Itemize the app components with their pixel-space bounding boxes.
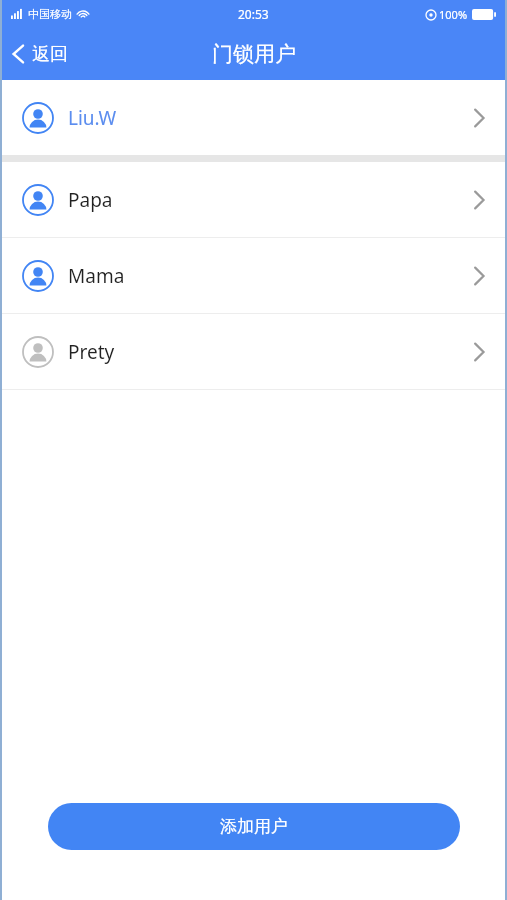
button[interactable]: Mama bbox=[0, 238, 507, 313]
staticText: Mama bbox=[68, 263, 125, 289]
staticText: 100% bbox=[439, 7, 468, 22]
button[interactable]: Liu.W bbox=[0, 80, 507, 155]
button[interactable]: Papa bbox=[0, 162, 507, 237]
staticText: 门锁用户 bbox=[212, 41, 296, 67]
other: Open Liu.W bbox=[473, 107, 485, 129]
staticText: Prety bbox=[68, 339, 115, 365]
other: Open Mama bbox=[473, 265, 485, 287]
button[interactable]: Prety bbox=[0, 314, 507, 389]
button[interactable]: 添加用户 bbox=[48, 803, 460, 850]
staticText: 中国移动 bbox=[28, 7, 72, 21]
button[interactable]: 返回 bbox=[0, 28, 82, 80]
other: Open Prety bbox=[473, 341, 485, 363]
staticText: 返回 bbox=[32, 43, 68, 66]
staticText: Papa bbox=[68, 187, 113, 213]
staticText: 添加用户 bbox=[220, 816, 288, 837]
other: Open Papa bbox=[473, 189, 485, 211]
staticText: Liu.W bbox=[68, 105, 117, 131]
staticText: 20:53 bbox=[238, 6, 269, 22]
